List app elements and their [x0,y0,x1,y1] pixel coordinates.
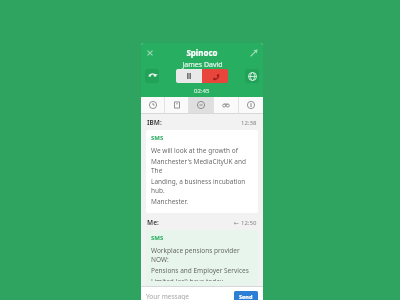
staticText: 12:50 [241,219,257,227]
staticText: We will look at the growth of [151,146,238,155]
button[interactable]: Notes [165,97,188,113]
button[interactable]: Send [234,291,258,300]
button[interactable]: Voicemail [214,97,238,113]
staticText: James David [182,60,223,70]
staticText: Limited (esl) have today announced [151,277,254,281]
button[interactable]: SMS [146,130,258,213]
staticText: Send [239,293,253,300]
staticText: SMS [151,234,164,242]
staticText: Manchester. [151,197,188,206]
button[interactable]: Hang up [202,69,228,83]
staticText: Spinoco [186,47,218,58]
button[interactable]: Transfer call [145,69,159,83]
button[interactable]: Globe [245,69,259,83]
button[interactable]: Close [145,48,155,58]
button[interactable]: Recent [141,97,164,113]
staticText: 02:45 [194,87,210,95]
button[interactable]: Info [239,97,263,113]
staticText: ← [234,219,241,227]
staticText: Workplace pensions provider NOW: [151,246,254,264]
staticText: Me: [147,218,159,227]
staticText: 12:38 [241,119,257,127]
staticText: SMS [151,134,164,142]
staticText: Landing, a business incubation hub. [151,177,254,195]
staticText: Your message [146,292,189,300]
staticText: Pensions and Employer Services [151,266,249,275]
button[interactable]: Expand [249,48,259,58]
button[interactable]: Hold [176,69,202,83]
staticText: IBM: [147,118,162,127]
button[interactable]: SMS [146,230,258,286]
staticText: Manchester's MediaCityUK and The [151,157,254,175]
button[interactable]: Chat [189,97,213,113]
